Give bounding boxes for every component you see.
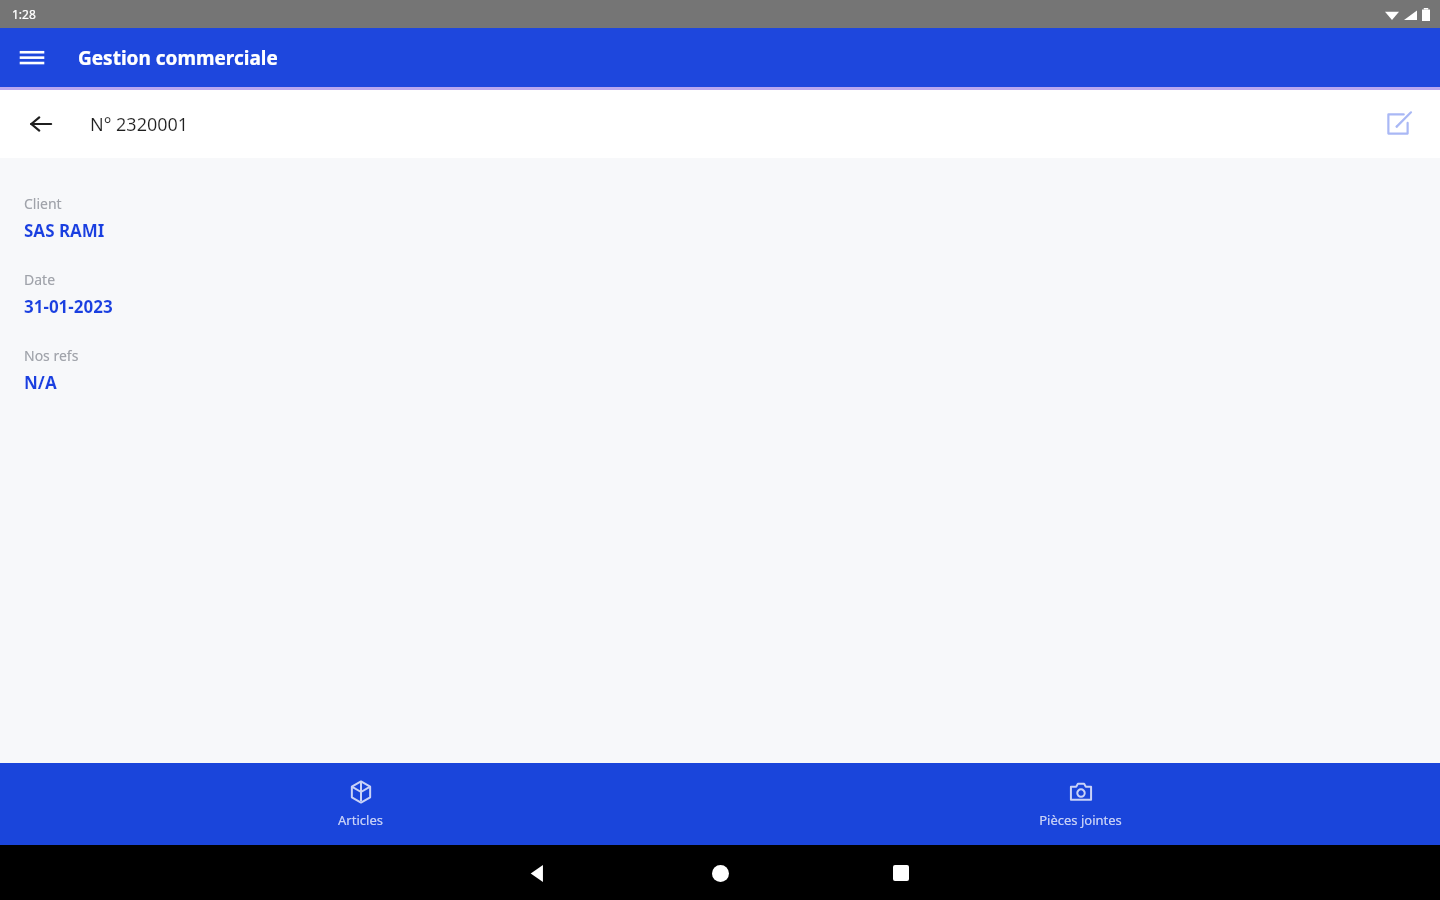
staticText: SAS RAMI [24,219,105,242]
staticText: 31-01-2023 [24,295,113,318]
button[interactable]: Back [18,101,64,147]
staticText: Client [24,194,62,213]
staticText: Articles [338,811,383,829]
staticText: Nos refs [24,346,79,365]
staticText: Gestion commerciale [78,45,278,71]
staticText: Date [24,270,56,289]
button[interactable]: Edit [1376,102,1420,146]
button[interactable]: Recents [879,851,923,895]
staticText: N° 2320001 [90,112,189,137]
button[interactable]: Articles [314,772,407,837]
button[interactable]: Home [698,851,742,895]
staticText: 1:28 [12,6,36,22]
staticText: Pièces jointes [1039,811,1122,829]
button[interactable]: Menu [8,34,56,82]
button[interactable]: Back [515,851,559,895]
button[interactable]: Pièces jointes [1015,772,1146,837]
staticText: N/A [24,371,57,394]
